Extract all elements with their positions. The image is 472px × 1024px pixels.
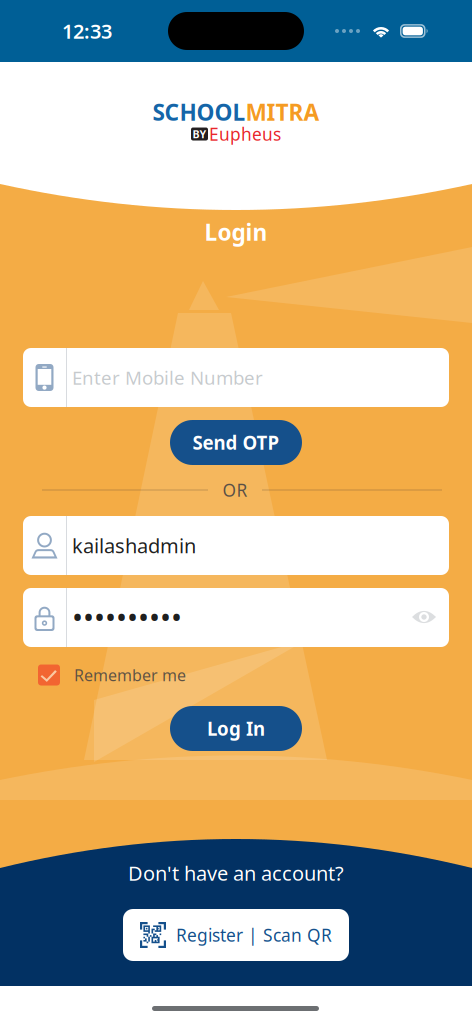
staticText: Remember me — [74, 664, 186, 686]
staticText: SCHOOL — [152, 97, 245, 127]
staticText: Register | Scan QR — [176, 923, 332, 946]
button[interactable]: Log In — [170, 706, 302, 751]
staticText: Enter Mobile Number — [72, 365, 263, 390]
staticText: OR — [222, 478, 247, 501]
staticText: Log In — [207, 716, 265, 741]
staticText: BY — [192, 127, 206, 141]
staticText: kailashadmin — [72, 532, 196, 559]
button[interactable]: Show password — [401, 594, 447, 640]
staticText: 12:33 — [62, 18, 112, 44]
button[interactable]: Register | Scan QR — [123, 909, 349, 961]
staticText: Send OTP — [192, 430, 279, 455]
staticText: Eupheus — [209, 122, 281, 145]
button[interactable]: Send OTP — [170, 420, 302, 465]
button[interactable]: Remember me — [38, 660, 218, 690]
staticText: Don't have an account? — [128, 860, 344, 886]
staticText: MITRA — [245, 97, 319, 127]
staticText: Login — [204, 217, 267, 247]
staticText: •••••••••• — [72, 597, 182, 636]
